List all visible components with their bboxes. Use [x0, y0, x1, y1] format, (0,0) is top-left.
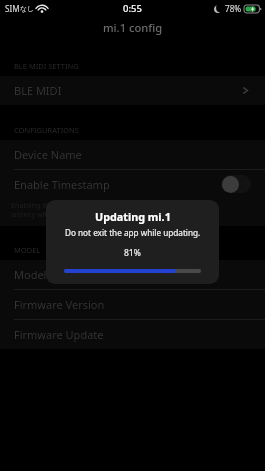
staticText: 0:55: [123, 2, 142, 15]
staticText: MODEL: [14, 245, 41, 255]
staticText: CONFIGURATIONS: [14, 125, 79, 135]
staticText: Device Name: [14, 147, 82, 162]
staticText: 78%: [225, 3, 242, 14]
staticText: Do not exit the app while updating.: [65, 227, 201, 238]
staticText: Model: [14, 267, 47, 282]
button[interactable]: Enable Timestamp: [0, 170, 265, 199]
button[interactable]: Enable Timestamp: [221, 175, 251, 193]
button[interactable]: Model: [0, 260, 265, 289]
staticText: mi.1 config: [103, 20, 163, 35]
other: Battery charging: [244, 5, 262, 13]
button[interactable]: Device Name: [0, 140, 265, 169]
staticText: BLE MIDI: [14, 83, 62, 98]
staticText: 81%: [124, 247, 141, 259]
button[interactable]: BLE MIDI: [0, 76, 265, 105]
staticText: SIM: [5, 3, 20, 14]
staticText: Firmware Update: [14, 327, 104, 342]
staticText: なし: [20, 4, 34, 13]
other: Open BLE MIDI: [241, 86, 250, 95]
staticText: Updating mi.1: [95, 209, 171, 224]
staticText: Enable Timestamp: [14, 177, 110, 192]
staticText: BLE MIDI SETTING: [14, 61, 79, 71]
staticText: Firmware Version: [14, 297, 105, 312]
staticText: Enabling the timestamp can cause a big l…: [11, 200, 146, 219]
button[interactable]: Firmware Version: [0, 290, 265, 319]
button[interactable]: Firmware Update: [0, 320, 265, 349]
